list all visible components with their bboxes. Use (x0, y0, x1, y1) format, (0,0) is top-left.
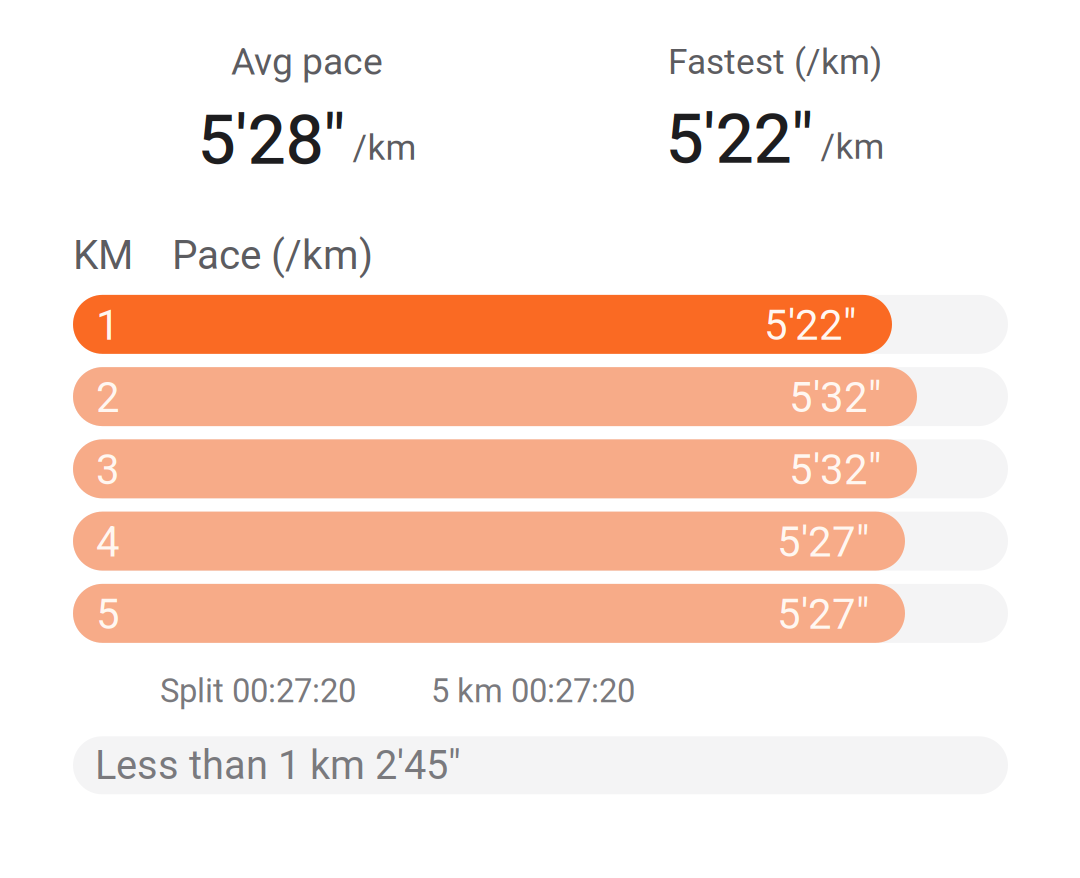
staticText: 1 (96, 301, 120, 350)
staticText: Split 00:27:20 (160, 672, 356, 710)
button[interactable]: 5 (73, 584, 1008, 643)
button[interactable]: 2 (73, 367, 1008, 426)
button[interactable]: 3 (73, 439, 1008, 498)
staticText: 5'22" (764, 301, 856, 350)
staticText: 5'22" (665, 99, 813, 179)
staticText: KM (73, 231, 133, 279)
staticText: /km (352, 127, 416, 168)
staticText: 5'32" (789, 445, 881, 494)
staticText: Fastest (/km) (668, 41, 882, 83)
staticText: Pace (/km) (172, 231, 373, 279)
staticText: 5 km 00:27:20 (431, 672, 635, 710)
staticText: /km (820, 126, 884, 167)
staticText: 3 (96, 445, 120, 494)
staticText: 5'28" (197, 101, 345, 180)
staticText: 5'32" (789, 373, 881, 422)
staticText: 5'27" (777, 517, 869, 567)
staticText: 2 (96, 373, 120, 422)
button[interactable]: 1 (73, 295, 1008, 354)
staticText: 5'27" (777, 590, 869, 639)
staticText: 4 (96, 517, 120, 567)
staticText: Avg pace (231, 40, 383, 84)
staticText: Less than 1 km 2'45" (95, 742, 461, 789)
button[interactable]: 4 (73, 512, 1008, 571)
button[interactable]: Less than 1 km 2'45" (73, 736, 1008, 794)
staticText: 5 (96, 590, 120, 639)
